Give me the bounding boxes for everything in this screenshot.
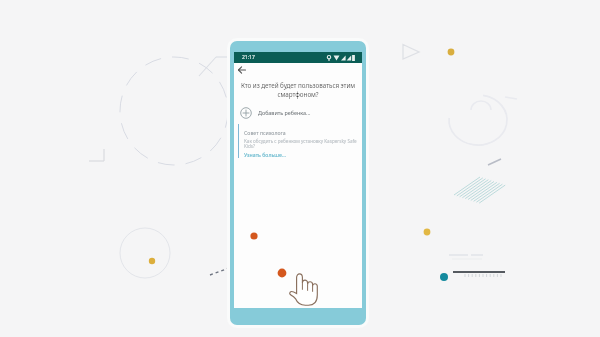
button[interactable]: Добавить ребенка... xyxy=(234,106,362,119)
staticText: Кто из детей будет пользоваться этим сма… xyxy=(238,81,358,99)
staticText: Совет психолога xyxy=(244,129,286,136)
staticText: Добавить ребенка... xyxy=(258,109,311,116)
staticText: 21:17 xyxy=(242,54,255,61)
staticText: Как обсудить с ребенком установку Kasper… xyxy=(244,138,366,150)
button[interactable]: Back xyxy=(236,64,248,76)
button[interactable]: Узнать больше... xyxy=(244,151,286,158)
